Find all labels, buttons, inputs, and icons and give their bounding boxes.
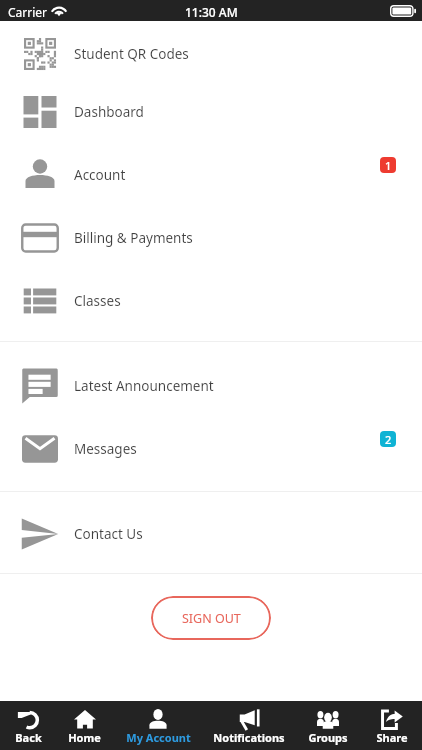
button[interactable]: Groups	[294, 701, 362, 750]
other: Home	[74, 708, 96, 730]
button[interactable]: Student QR Codes	[0, 22, 422, 85]
button[interactable]: Home	[56, 701, 113, 750]
other: Notifications	[238, 708, 260, 730]
button[interactable]: Back	[0, 701, 56, 750]
button[interactable]: Messages	[0, 417, 422, 480]
staticText: Contact Us	[74, 525, 143, 543]
staticText: Share	[376, 730, 408, 745]
staticText: SIGN OUT	[182, 610, 241, 627]
button[interactable]: Notifications	[203, 701, 294, 750]
staticText: Messages	[74, 440, 137, 458]
staticText: Dashboard	[74, 103, 144, 121]
other: Back	[17, 708, 39, 730]
button[interactable]: Billing & Payments	[0, 206, 422, 269]
staticText: My Account	[126, 730, 191, 745]
button[interactable]: Share	[362, 701, 422, 750]
staticText: Classes	[74, 292, 121, 310]
other: My Account	[147, 708, 169, 730]
staticText: Carrier	[8, 4, 48, 20]
button[interactable]: Contact Us	[0, 502, 422, 565]
button[interactable]: SIGN OUT	[151, 596, 271, 640]
staticText: Back	[15, 730, 42, 745]
staticText: Student QR Codes	[74, 45, 189, 63]
staticText: Groups	[308, 730, 348, 745]
staticText: Home	[68, 730, 101, 745]
other: Groups	[317, 708, 339, 730]
button[interactable]: Latest Announcement	[0, 354, 422, 417]
staticText: 1	[385, 158, 392, 173]
staticText: 2	[385, 432, 392, 447]
staticText: Account	[74, 166, 126, 184]
staticText: Notifications	[213, 730, 285, 745]
button[interactable]: Dashboard	[0, 80, 422, 143]
button[interactable]: Classes	[0, 269, 422, 332]
button[interactable]: My Account	[113, 701, 203, 750]
staticText: Latest Announcement	[74, 377, 214, 395]
staticText: Billing & Payments	[74, 229, 193, 247]
other: Share	[381, 708, 403, 730]
staticText: 11:30 AM	[185, 4, 238, 20]
button[interactable]: Account	[0, 143, 422, 206]
